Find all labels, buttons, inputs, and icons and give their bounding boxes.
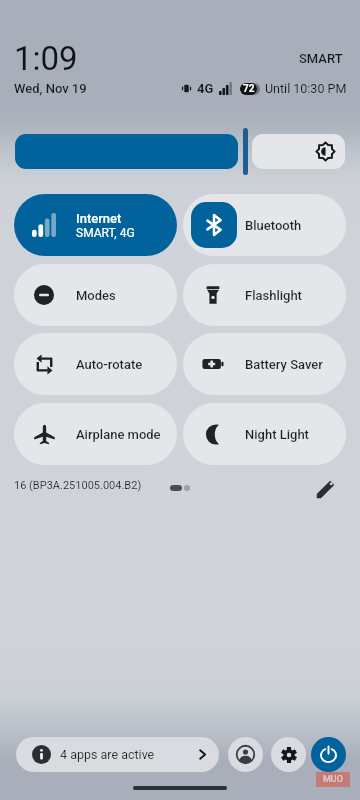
button[interactable]: Brightness high — [252, 134, 345, 169]
button[interactable]: Auto-rotate — [14, 333, 177, 395]
staticText: Until 10:30 PM — [265, 81, 347, 96]
button[interactable]: Flashlight — [183, 264, 346, 326]
button[interactable]: Edit tiles — [312, 476, 338, 502]
button[interactable]: Bluetooth — [183, 194, 346, 256]
staticText: 4G — [197, 81, 214, 96]
staticText: Airplane mode — [76, 427, 161, 442]
staticText: Internet — [76, 211, 122, 226]
staticText: 72 — [243, 83, 255, 95]
staticText: MUO — [323, 774, 343, 785]
button[interactable]: Brightness — [15, 134, 238, 169]
staticText: Modes — [76, 288, 116, 303]
staticText: Night Light — [245, 427, 309, 442]
button[interactable]: Battery Saver — [183, 333, 346, 395]
staticText: Auto-rotate — [76, 357, 143, 372]
staticText: Bluetooth — [245, 218, 302, 233]
button[interactable]: Settings — [271, 737, 306, 772]
staticText: 16 (BP3A.251005.004.B2) — [14, 479, 142, 492]
staticText: 1:09 — [14, 39, 78, 78]
button[interactable]: Modes — [14, 264, 177, 326]
button[interactable]: Power — [311, 737, 346, 772]
staticText: Flashlight — [245, 288, 302, 303]
button[interactable]: Internet — [14, 194, 177, 256]
staticText: Battery Saver — [245, 357, 323, 372]
button[interactable]: 4 apps are active — [16, 737, 219, 772]
staticText: SMART — [299, 51, 343, 66]
staticText: SMART, 4G — [76, 226, 135, 240]
staticText: 4 apps are active — [60, 747, 155, 762]
staticText: Wed, Nov 19 — [14, 81, 87, 96]
button[interactable]: Account — [228, 737, 263, 772]
button[interactable]: Airplane mode — [14, 403, 177, 465]
button[interactable]: Night Light — [183, 403, 346, 465]
